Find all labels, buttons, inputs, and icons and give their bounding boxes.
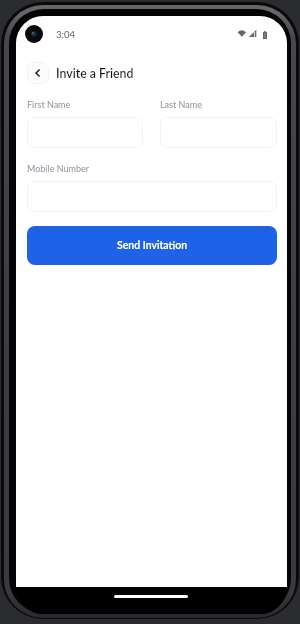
staticText: 3:04 bbox=[56, 29, 75, 40]
staticText: Last Name bbox=[160, 99, 202, 110]
button[interactable] bbox=[27, 117, 143, 148]
other: Battery bbox=[263, 31, 267, 39]
staticText: Mobile Number bbox=[27, 163, 89, 174]
button[interactable] bbox=[160, 117, 277, 148]
button[interactable]: Send Invitation bbox=[27, 226, 277, 265]
staticText: Send Invitation bbox=[117, 239, 188, 252]
staticText: First Name bbox=[27, 99, 71, 110]
staticText: Invite a Friend bbox=[56, 66, 134, 81]
button[interactable]: Back bbox=[27, 62, 49, 84]
other: Status icons bbox=[236, 29, 268, 39]
button[interactable] bbox=[27, 181, 277, 212]
